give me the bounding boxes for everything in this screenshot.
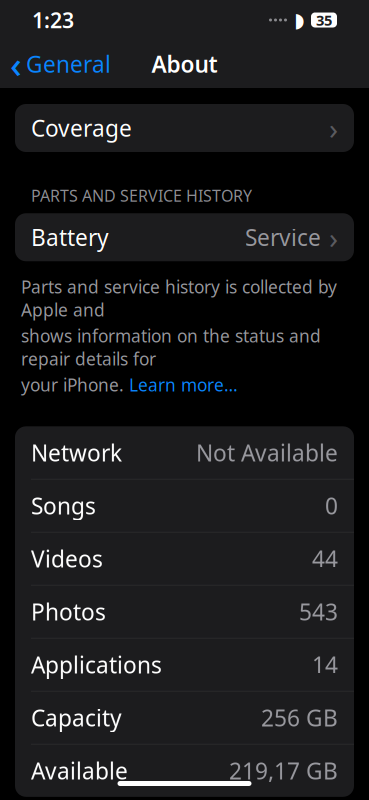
staticText: 35 bbox=[316, 10, 332, 30]
staticText: Battery bbox=[31, 222, 109, 252]
button[interactable]: ‹ bbox=[0, 34, 111, 94]
staticText: Capacity bbox=[31, 702, 122, 733]
button[interactable]: Battery bbox=[15, 213, 354, 261]
staticText: About bbox=[151, 49, 217, 79]
staticText: Videos bbox=[31, 543, 103, 574]
staticText: 256 GB bbox=[261, 702, 338, 733]
staticText: 543 bbox=[299, 596, 338, 627]
staticText: 1:23 bbox=[32, 6, 74, 34]
staticText: Network bbox=[31, 437, 122, 468]
staticText: 14 bbox=[312, 649, 338, 680]
staticText: PARTS AND SERVICE HISTORY bbox=[31, 185, 252, 206]
staticText: Photos bbox=[31, 596, 106, 627]
staticText: Parts and service history is collected b… bbox=[21, 275, 337, 321]
staticText: Service bbox=[245, 222, 321, 252]
staticText: Applications bbox=[31, 649, 162, 680]
staticText: ‹ bbox=[10, 40, 22, 88]
button[interactable]: Learn more… bbox=[129, 373, 238, 396]
staticText: General bbox=[26, 49, 111, 79]
staticText: ◗ bbox=[294, 9, 305, 31]
staticText: Coverage bbox=[31, 113, 132, 143]
staticText: 0 bbox=[325, 490, 338, 521]
staticText: Available bbox=[31, 755, 128, 786]
staticText: 44 bbox=[312, 543, 338, 574]
staticText: 219,17 GB bbox=[229, 755, 338, 786]
button[interactable]: Coverage bbox=[15, 104, 354, 152]
staticText: › bbox=[329, 108, 338, 147]
staticText: › bbox=[329, 218, 338, 257]
staticText: Not Available bbox=[196, 437, 338, 468]
staticText: your iPhone. bbox=[21, 373, 129, 396]
staticText: Songs bbox=[31, 490, 96, 521]
staticText: shows information on the status and repa… bbox=[21, 324, 321, 370]
staticText: Learn more… bbox=[129, 373, 238, 396]
